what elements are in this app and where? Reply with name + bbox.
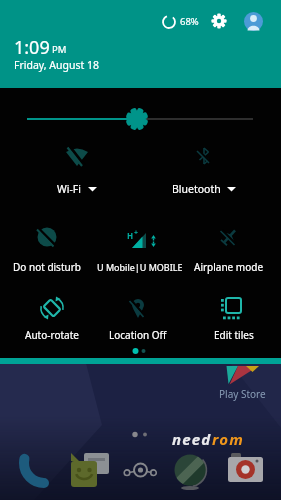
staticText: Airplane mode (194, 260, 264, 274)
button[interactable] (6, 292, 99, 348)
button[interactable] (226, 450, 266, 490)
staticText: Location Off (109, 328, 167, 342)
staticText: Do not disturb (13, 260, 81, 274)
staticText: 68% (180, 15, 199, 28)
staticText: 1:09 (14, 35, 50, 60)
staticText: U Mobile|U MOBILE (97, 261, 183, 273)
button[interactable] (222, 362, 262, 402)
button[interactable] (94, 222, 187, 278)
staticText: H (127, 230, 134, 241)
button[interactable] (172, 450, 212, 490)
button[interactable] (94, 292, 187, 348)
button[interactable] (120, 452, 160, 492)
staticText: Bluetooth (172, 182, 221, 196)
staticText: Play Store (219, 387, 266, 401)
staticText: Friday, August 18 (14, 58, 100, 72)
button[interactable] (68, 449, 112, 493)
staticText: + (134, 228, 139, 238)
button[interactable] (27, 140, 127, 198)
staticText: Auto-rotate (25, 328, 79, 342)
button[interactable] (187, 222, 280, 278)
staticText: PM (52, 43, 67, 56)
button[interactable] (187, 292, 280, 348)
staticText: Edit tiles (214, 328, 254, 342)
button[interactable] (210, 12, 228, 30)
staticText: rom (212, 429, 244, 449)
staticText: Wi-Fi (57, 182, 82, 196)
staticText: need (172, 429, 212, 449)
button[interactable] (16, 452, 56, 492)
button[interactable] (244, 12, 263, 31)
button[interactable] (1, 222, 94, 278)
button[interactable] (154, 140, 254, 198)
